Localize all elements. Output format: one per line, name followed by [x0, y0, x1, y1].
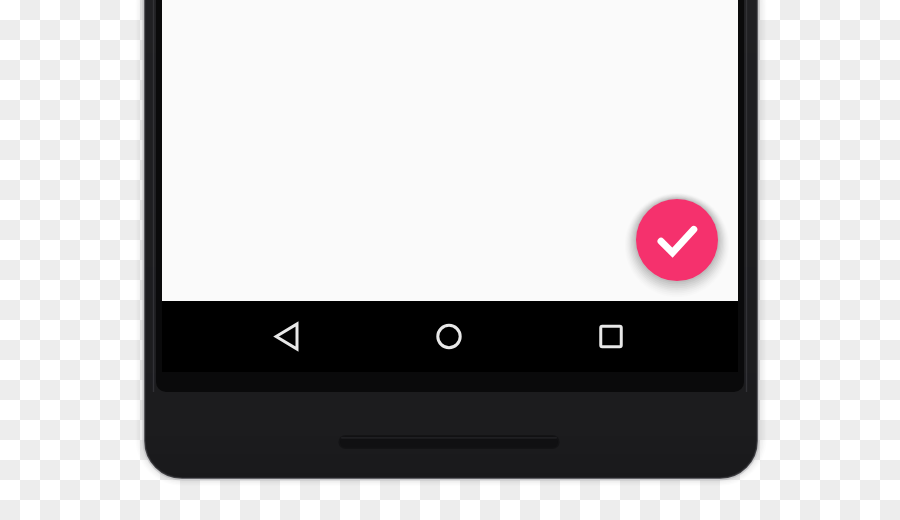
button[interactable]: Home: [354, 301, 546, 372]
button[interactable]: Recent apps: [546, 301, 738, 372]
button[interactable]: Back: [162, 301, 354, 372]
button[interactable]: Confirm: [636, 199, 718, 281]
